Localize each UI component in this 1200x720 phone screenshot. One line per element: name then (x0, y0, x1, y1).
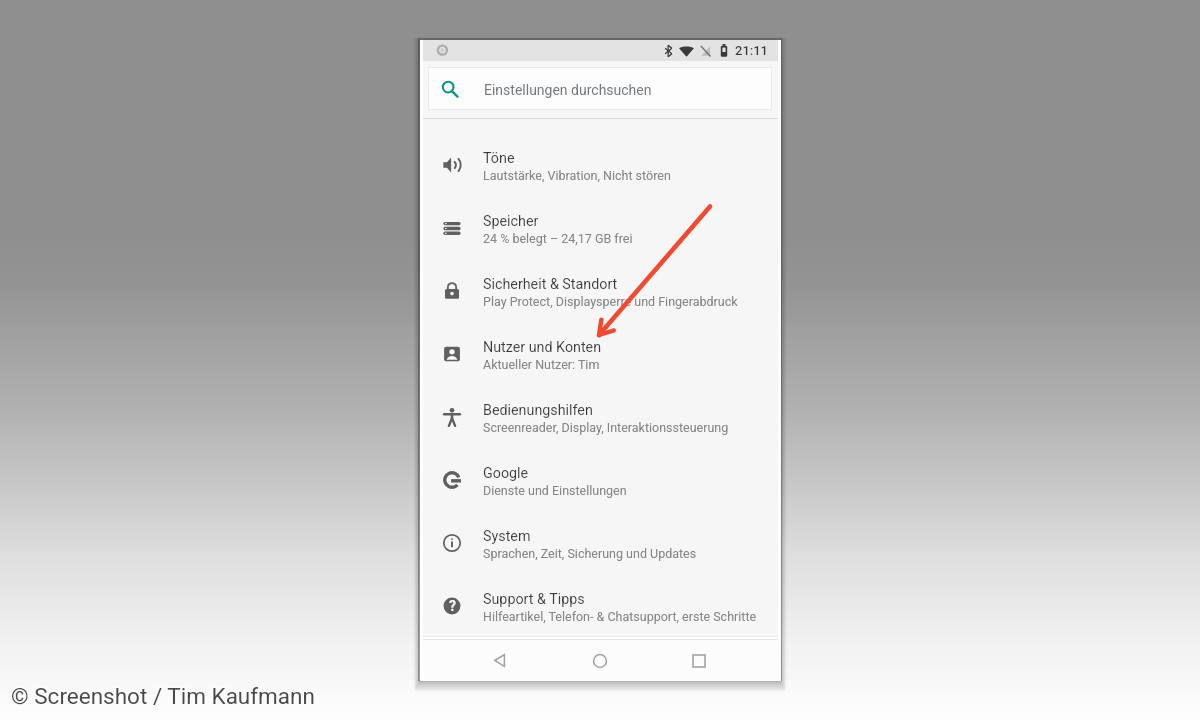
button[interactable]: Bedienungshilfen (420, 394, 780, 457)
button[interactable]: Google (420, 457, 780, 520)
staticText: © Screenshot / Tim Kaufmann (10, 685, 314, 711)
staticText: © Screenshot / Tim Kaufmann (10, 681, 314, 707)
staticText: © Screenshot / Tim Kaufmann (10, 684, 314, 710)
button[interactable]: Einstellungen durchsuchen (428, 67, 772, 110)
staticText: © Screenshot / Tim Kaufmann (12, 684, 316, 710)
staticText: © Screenshot / Tim Kaufmann (12, 683, 316, 709)
staticText: Play Protect, Displaysperre und Fingerab… (483, 294, 738, 309)
staticText: Sprachen, Zeit, Sicherung und Updates (483, 546, 697, 561)
staticText: Support & Tipps (483, 591, 585, 608)
staticText: © Screenshot / Tim Kaufmann (9, 682, 313, 708)
staticText: Screenreader, Display, Interaktionssteue… (483, 420, 729, 435)
button[interactable]: Speicher (420, 205, 780, 268)
staticText: © Screenshot / Tim Kaufmann (11, 682, 315, 708)
staticText: © Screenshot / Tim Kaufmann (9, 685, 313, 711)
staticText: ? (449, 598, 456, 614)
staticText: © Screenshot / Tim Kaufmann (10, 682, 314, 708)
staticText: © Screenshot / Tim Kaufmann (9, 683, 313, 709)
staticText: © Screenshot / Tim Kaufmann (10, 683, 314, 709)
staticText: © Screenshot / Tim Kaufmann (11, 683, 315, 709)
staticText: © Screenshot / Tim Kaufmann (13, 684, 317, 710)
staticText: © Screenshot / Tim Kaufmann (9, 684, 313, 710)
staticText: Google (483, 465, 529, 482)
staticText: © Screenshot / Tim Kaufmann (13, 681, 317, 707)
staticText: © Screenshot / Tim Kaufmann (13, 685, 317, 711)
staticText: Dienste und Einstellungen (483, 483, 627, 498)
staticText: Speicher (483, 213, 539, 230)
button[interactable]: Back (478, 640, 522, 681)
staticText: © Screenshot / Tim Kaufmann (12, 681, 316, 707)
staticText: 24 % belegt – 24,17 GB frei (483, 231, 633, 246)
staticText: System (483, 528, 531, 545)
staticText: Nutzer und Konten (483, 339, 602, 356)
button[interactable]: Home (578, 640, 622, 681)
staticText: © Screenshot / Tim Kaufmann (12, 685, 316, 711)
staticText: Lautstärke, Vibration, Nicht stören (483, 168, 671, 183)
staticText: © Screenshot / Tim Kaufmann (13, 682, 317, 708)
staticText: © Screenshot / Tim Kaufmann (11, 681, 315, 707)
staticText: Einstellungen durchsuchen (484, 82, 652, 98)
staticText: © Screenshot / Tim Kaufmann (9, 681, 313, 707)
staticText: 21:11 (735, 43, 768, 58)
button[interactable]: Nutzer und Konten (420, 331, 780, 394)
staticText: Aktueller Nutzer: Tim (483, 357, 600, 372)
staticText: © Screenshot / Tim Kaufmann (12, 682, 316, 708)
staticText: Hilfeartikel, Telefon- & Chatsupport, er… (483, 609, 757, 624)
staticText: © Screenshot / Tim Kaufmann (11, 684, 315, 710)
button[interactable]: System (420, 520, 780, 583)
staticText: Sicherheit & Standort (483, 276, 618, 293)
button[interactable]: Sicherheit & Standort (420, 268, 780, 331)
staticText: Bedienungshilfen (483, 402, 593, 419)
button[interactable]: Töne (420, 142, 780, 205)
staticText: Töne (483, 150, 515, 167)
staticText: © Screenshot / Tim Kaufmann (11, 685, 315, 711)
button[interactable]: ? (420, 583, 780, 646)
button[interactable]: Recent apps (677, 640, 721, 681)
staticText: © Screenshot / Tim Kaufmann (13, 683, 317, 709)
